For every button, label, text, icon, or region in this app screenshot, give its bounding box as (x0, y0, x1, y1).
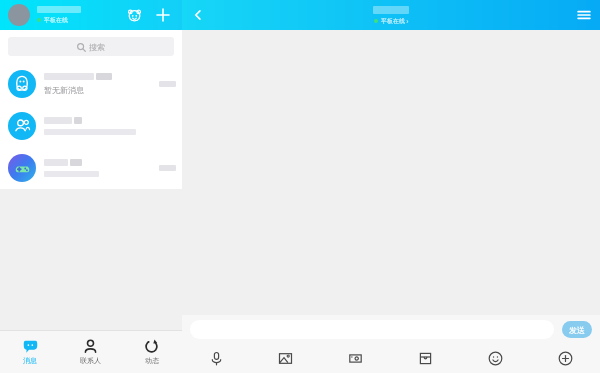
button[interactable] (0, 147, 182, 189)
button[interactable]: QQ Pet (123, 4, 145, 26)
button[interactable] (0, 105, 182, 147)
button[interactable]: Red packet (390, 343, 460, 373)
staticText: 暂无新消息 (44, 85, 84, 95)
button[interactable]: More (530, 343, 600, 373)
button[interactable]: Add (152, 4, 174, 26)
staticText: 动态 (145, 356, 159, 365)
button[interactable]: Camera (320, 343, 390, 373)
staticText: 搜索 (89, 42, 105, 52)
staticText: 发送 (569, 325, 585, 335)
button[interactable]: Back (182, 0, 214, 30)
button[interactable]: Photo (251, 343, 320, 373)
button[interactable]: Emoji (460, 343, 530, 373)
button[interactable]: 消息 (0, 331, 60, 373)
staticText: 平板在线 › (381, 17, 409, 25)
button[interactable]: Voice (182, 343, 251, 373)
button[interactable]: 搜索 (8, 37, 174, 56)
button[interactable]: 发送 (562, 321, 592, 338)
button[interactable]: 联系人 (60, 331, 121, 373)
button[interactable]: 动态 (121, 331, 182, 373)
button[interactable]: Profile (8, 4, 30, 26)
staticText: 平板在线 (44, 16, 68, 24)
button[interactable]: Menu (568, 0, 600, 30)
staticText: 联系人 (80, 356, 101, 365)
button[interactable]: 暂无新消息 (0, 63, 182, 105)
staticText: 消息 (23, 356, 37, 365)
